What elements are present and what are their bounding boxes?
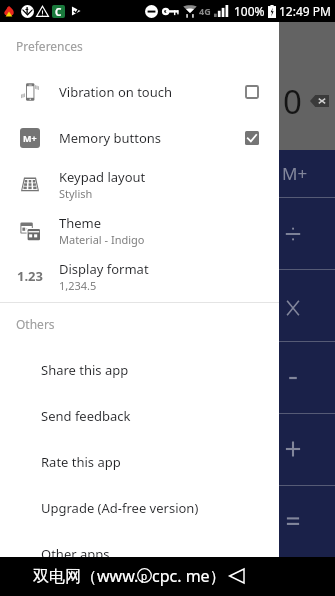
button[interactable]: Send feedback [0, 393, 279, 439]
button[interactable]: Share this app [0, 347, 279, 393]
button[interactable]: Other apps [0, 531, 279, 577]
staticText: Preferences [16, 38, 83, 54]
button[interactable]: minus [0, 341, 335, 413]
staticText: Others [16, 316, 55, 332]
staticText: M+ [282, 162, 308, 185]
button[interactable]: divide [0, 197, 335, 269]
staticText: Material - Indigo [59, 232, 145, 247]
staticText: 0 [283, 79, 302, 124]
staticText: Stylish [59, 186, 93, 201]
button[interactable]: Vibration on touch [0, 69, 279, 115]
staticText: C [55, 5, 62, 18]
button[interactable]: 1.23 [0, 253, 279, 299]
staticText: Display format [59, 260, 149, 278]
staticText: p [141, 569, 148, 583]
staticText: Theme [59, 214, 102, 232]
staticText: Other apps [41, 545, 110, 563]
staticText: M+ [23, 132, 37, 144]
staticText: Memory buttons [59, 129, 162, 147]
staticText: 1.23 [17, 267, 43, 285]
staticText: Rate this app [41, 453, 121, 471]
staticText: Send feedback [41, 407, 131, 425]
button[interactable]: M+ [0, 150, 335, 197]
staticText: Keypad layout [59, 168, 146, 186]
button[interactable]: Upgrade (Ad-free version) [0, 485, 279, 531]
button[interactable]: multiply [0, 269, 335, 341]
staticText: Share this app [41, 361, 129, 379]
staticText: cpc. me） [152, 565, 226, 587]
staticText: 4G [199, 5, 211, 17]
button[interactable]: Keypad layout [0, 161, 279, 207]
button[interactable]: Rate this app [0, 439, 279, 485]
staticText: 12:49 PM [279, 3, 331, 19]
staticText: Upgrade (Ad-free version) [41, 499, 199, 517]
button[interactable]: Theme [0, 207, 279, 253]
staticText: Vibration on touch [59, 83, 173, 101]
staticText: 100% [234, 3, 265, 19]
staticText: 1,234.5 [59, 278, 97, 293]
staticText: 双电网（www. [33, 565, 139, 587]
button[interactable]: M+ [0, 115, 279, 161]
button[interactable]: plus [0, 413, 335, 485]
button[interactable]: equals [0, 485, 335, 557]
